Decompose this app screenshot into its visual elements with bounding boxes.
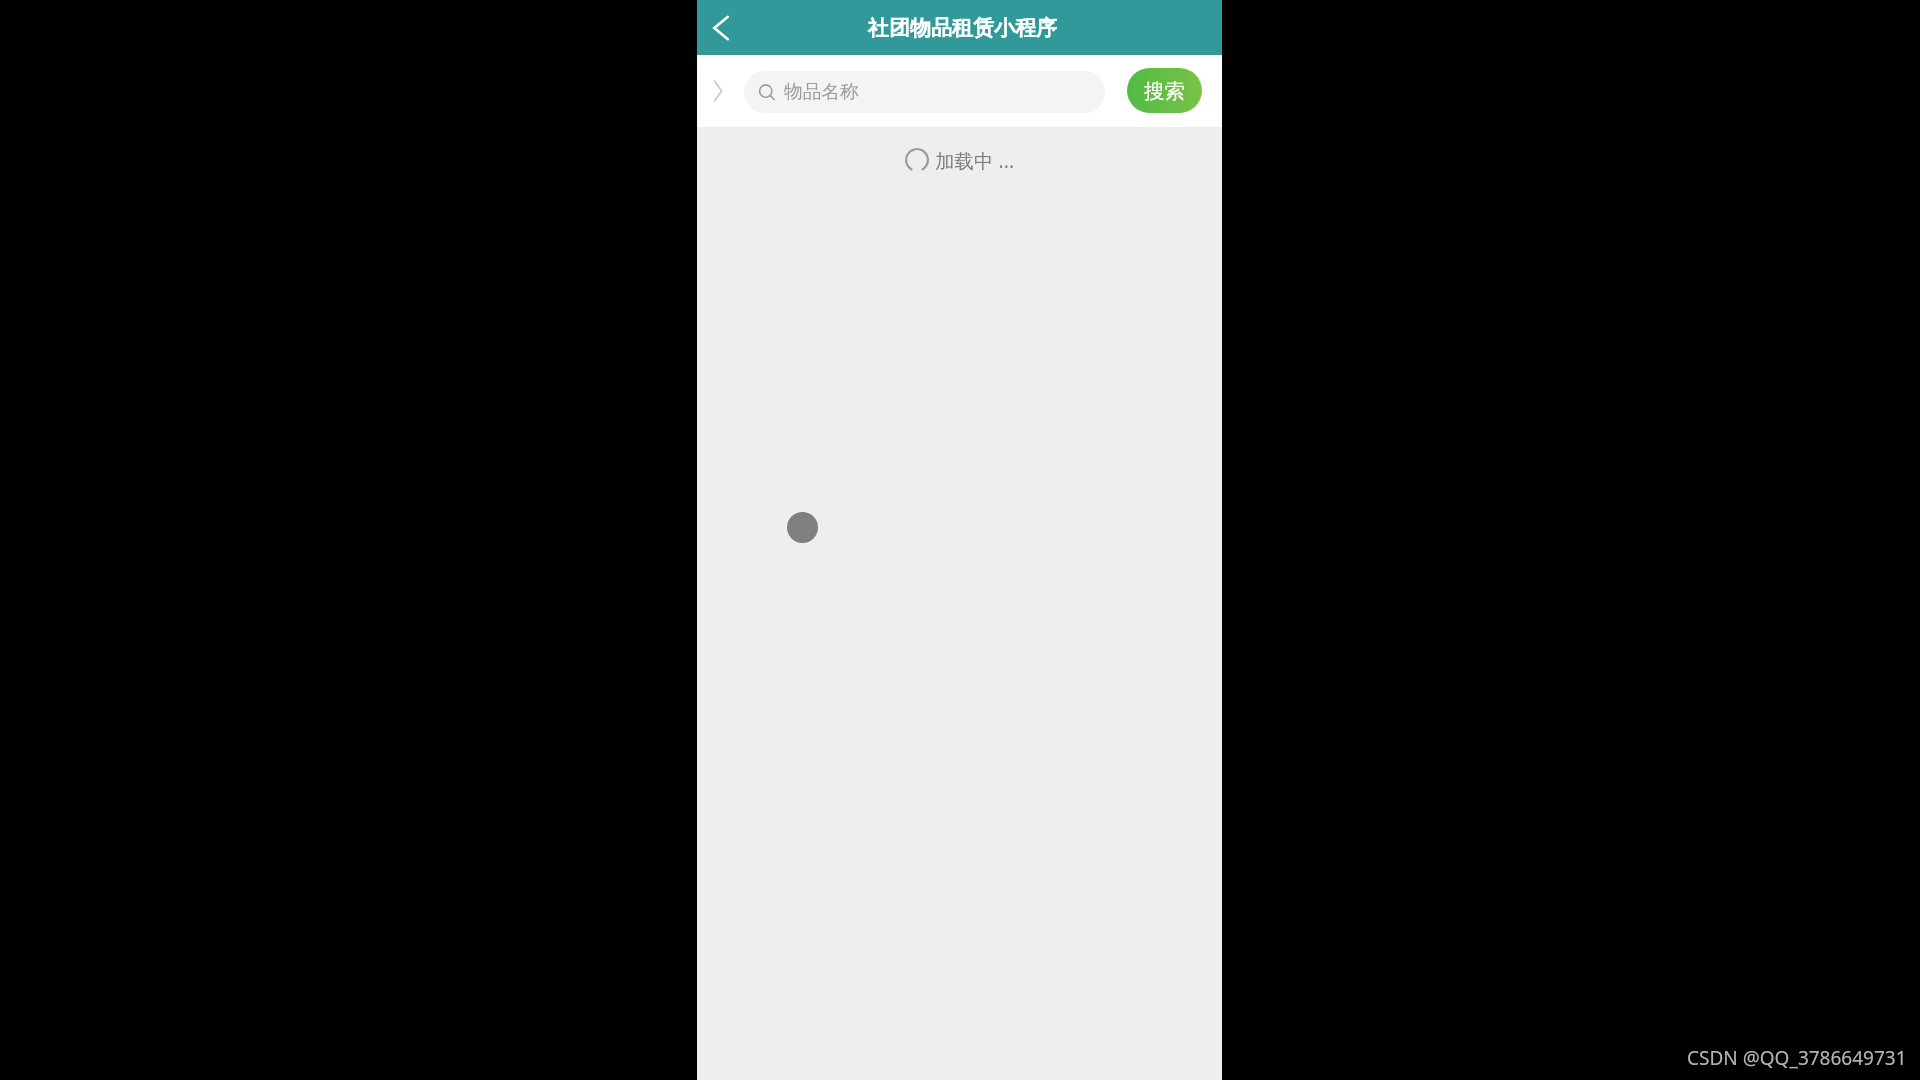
staticText: 搜索 <box>1144 78 1185 104</box>
button[interactable]: 搜索 <box>1127 68 1202 113</box>
button[interactable]: 物品名称 <box>744 71 1105 113</box>
button[interactable]: Back <box>702 9 740 47</box>
staticText: 加载中 ... <box>935 147 1015 174</box>
button[interactable]: Expand filters <box>704 77 732 105</box>
staticText: 社团物品租赁小程序 <box>868 15 1057 41</box>
staticText: CSDN @QQ_3786649731 <box>1687 1045 1907 1071</box>
staticText: 物品名称 <box>784 80 859 104</box>
